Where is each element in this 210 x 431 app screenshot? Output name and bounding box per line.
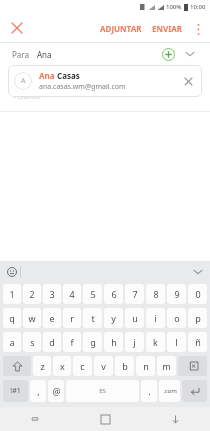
button[interactable]: ñ — [188, 332, 207, 352]
button[interactable]: n — [136, 356, 155, 376]
button[interactable]: @ — [48, 380, 64, 402]
button[interactable]: o — [167, 308, 186, 328]
button[interactable]: 1 — [3, 284, 21, 304]
button[interactable]: i — [146, 308, 165, 328]
staticText: !#1 — [10, 386, 21, 396]
button[interactable]: ES — [66, 380, 139, 402]
button[interactable]: Recientes — [0, 407, 70, 431]
button[interactable]: Más opciones — [188, 19, 208, 39]
button[interactable]: Emoji — [4, 264, 20, 280]
button[interactable]: Quitar destinatario — [180, 73, 196, 89]
staticText: 6 — [111, 288, 117, 300]
button[interactable]: Atrás — [140, 407, 210, 431]
staticText: i — [154, 312, 157, 324]
staticText: .com — [163, 387, 177, 395]
staticText: Asunto — [14, 90, 41, 101]
staticText: 100% — [166, 3, 182, 11]
staticText: A — [21, 76, 26, 86]
button[interactable]: w — [23, 308, 41, 328]
button[interactable]: 8 — [146, 284, 165, 304]
staticText: 10:00 — [190, 3, 206, 11]
staticText: f — [70, 336, 74, 348]
button[interactable]: 5 — [83, 284, 102, 304]
staticText: o — [174, 312, 180, 324]
staticText: y — [111, 312, 116, 324]
button[interactable]: h — [104, 332, 123, 352]
button[interactable]: e — [43, 308, 61, 328]
button[interactable]: z — [33, 356, 51, 376]
button[interactable]: ENVIAR — [147, 18, 188, 39]
button[interactable]: r — [63, 308, 81, 328]
button[interactable]: Borrar — [178, 356, 207, 376]
button[interactable]: d — [43, 332, 61, 352]
button[interactable]: !#1 — [3, 380, 28, 402]
button[interactable]: ADJUNTAR — [95, 18, 147, 39]
button[interactable]: a — [3, 332, 21, 352]
staticText: c — [80, 360, 85, 372]
button[interactable]: b — [115, 356, 134, 376]
staticText: Ana — [39, 70, 55, 81]
staticText: b — [122, 360, 128, 372]
button[interactable]: g — [83, 332, 102, 352]
staticText: q — [9, 312, 15, 324]
staticText: p — [195, 312, 201, 324]
button[interactable]: x — [53, 356, 71, 376]
button[interactable]: s — [23, 332, 41, 352]
button[interactable]: j — [125, 332, 144, 352]
staticText: t — [91, 312, 95, 324]
staticText: n — [143, 360, 149, 372]
staticText: e — [49, 312, 55, 324]
button[interactable]: v — [94, 356, 113, 376]
staticText: Ana — [37, 49, 52, 60]
button[interactable]: q — [3, 308, 21, 328]
button[interactable]: 9 — [167, 284, 186, 304]
staticText: 5 — [90, 288, 96, 300]
button[interactable]: Cerrar — [6, 17, 28, 39]
button[interactable]: Inicio — [70, 407, 140, 431]
staticText: v — [101, 360, 106, 372]
button[interactable]: t — [83, 308, 102, 328]
button[interactable]: 7 — [125, 284, 144, 304]
staticText: . — [148, 385, 151, 397]
button[interactable]: c — [73, 356, 92, 376]
staticText: ana.casas.wm@gmail.com — [39, 82, 126, 92]
button[interactable]: Intro — [182, 380, 207, 402]
button[interactable]: .com — [159, 380, 180, 402]
button[interactable]: 4 — [63, 284, 81, 304]
button[interactable]: p — [188, 308, 207, 328]
button[interactable]: k — [146, 332, 165, 352]
staticText: 9 — [174, 288, 180, 300]
staticText: 0 — [195, 288, 201, 300]
button[interactable]: 0 — [188, 284, 207, 304]
button[interactable]: l — [167, 332, 186, 352]
button[interactable]: Ocultar teclado — [190, 264, 206, 280]
staticText: g — [90, 336, 96, 348]
button[interactable]: m — [157, 356, 176, 376]
staticText: ENVIAR — [152, 23, 183, 34]
staticText: h — [111, 336, 117, 348]
button[interactable]: . — [141, 380, 157, 402]
button[interactable]: 2 — [23, 284, 41, 304]
button[interactable]: f — [63, 332, 81, 352]
staticText: 1 — [9, 288, 15, 300]
staticText: Casas — [55, 70, 80, 81]
staticText: ES — [99, 387, 106, 395]
button[interactable]: 6 — [104, 284, 123, 304]
staticText: m — [162, 360, 171, 372]
staticText: x — [60, 360, 65, 372]
button[interactable]: y — [104, 308, 123, 328]
button[interactable]: Expandir — [182, 46, 198, 62]
staticText: 3 — [49, 288, 55, 300]
staticText: j — [133, 336, 136, 348]
staticText: ADJUNTAR — [100, 23, 142, 34]
button[interactable]: 3 — [43, 284, 61, 304]
button[interactable]: , — [30, 380, 46, 402]
button[interactable]: Añadir contacto — [160, 46, 176, 62]
button[interactable]: A — [8, 65, 202, 97]
staticText: a — [9, 336, 15, 348]
button[interactable]: Mayúsculas — [3, 356, 31, 376]
staticText: k — [153, 336, 158, 348]
button[interactable]: u — [125, 308, 144, 328]
staticText: 2 — [29, 288, 35, 300]
staticText: @ — [52, 385, 61, 397]
